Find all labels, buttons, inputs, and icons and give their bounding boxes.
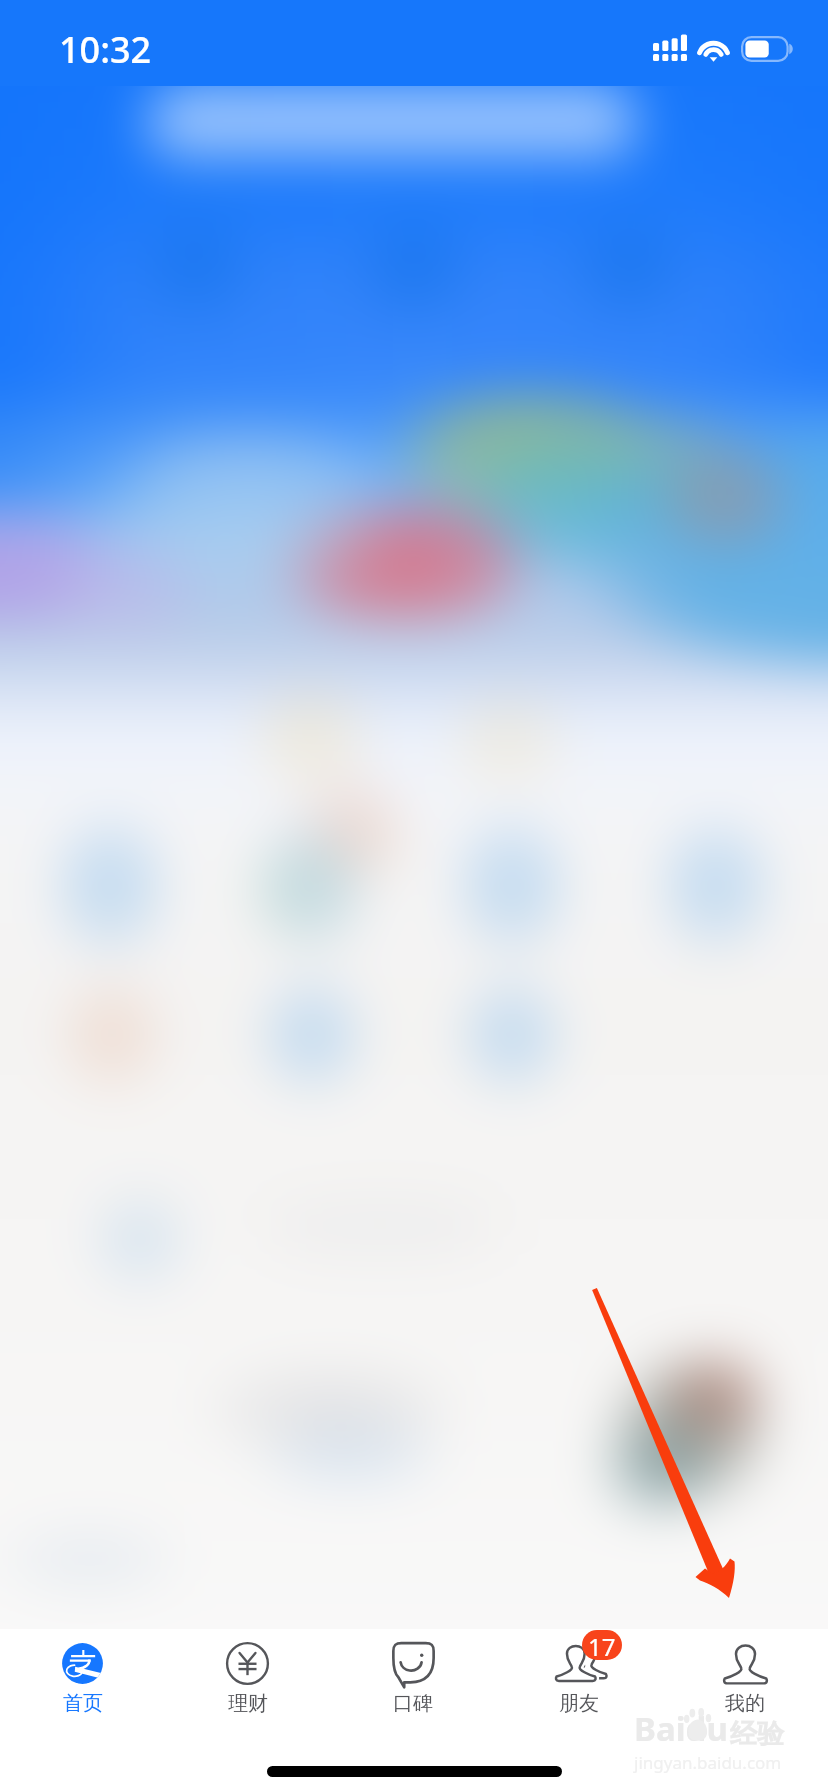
staticText: 理财 <box>228 1691 268 1716</box>
staticText: 17 <box>588 1630 616 1660</box>
staticText: jingyan.baidu.com <box>634 1751 782 1774</box>
button[interactable]: 17 <box>496 1629 662 1716</box>
staticText: 朋友 <box>559 1691 599 1716</box>
button[interactable]: 理财 <box>165 1629 330 1716</box>
button[interactable]: 口碑 <box>330 1629 496 1716</box>
staticText: 口碑 <box>393 1691 433 1716</box>
staticText: 我的 <box>725 1691 765 1716</box>
staticText: 首页 <box>63 1691 103 1716</box>
staticText: 10:32 <box>59 25 152 74</box>
staticText: 经验 <box>730 1717 784 1751</box>
button[interactable]: 我的 <box>662 1629 828 1716</box>
button[interactable]: 首页 <box>0 1629 165 1716</box>
staticText: Baidu <box>634 1706 728 1751</box>
